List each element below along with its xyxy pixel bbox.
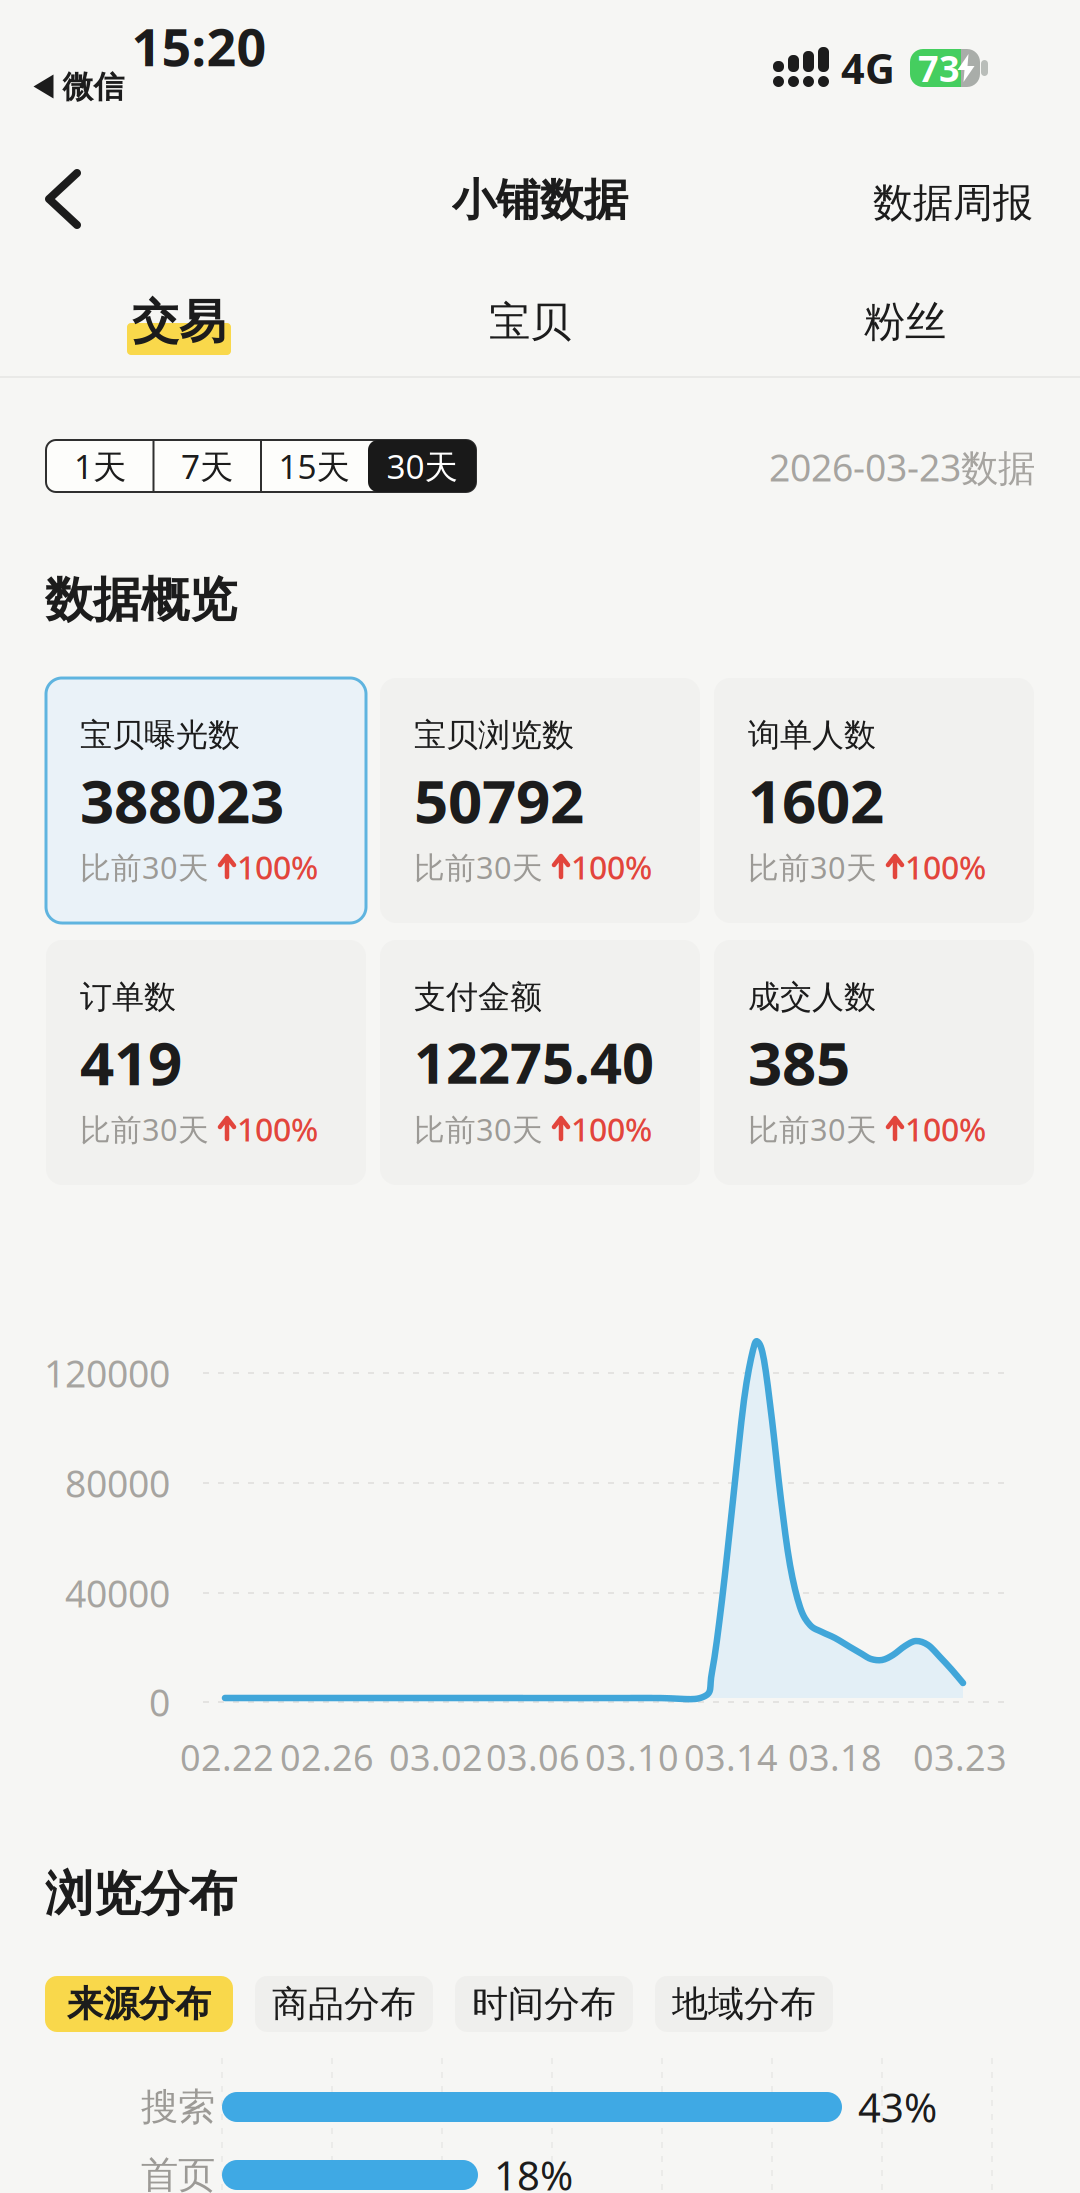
staticText: 02.26 [280,1733,374,1781]
button[interactable]: 来源分布 [45,1976,233,2032]
staticText: 02.22 [180,1733,274,1781]
staticText: 43% [858,2080,937,2133]
staticText: 宝贝曝光数 [80,715,240,755]
button[interactable]: 支付金额 [380,940,700,1185]
staticText: 微信 [62,68,124,106]
button[interactable]: 粉丝 [864,297,946,347]
staticText: 交易 [132,293,226,351]
staticText: 宝贝 [489,297,571,347]
staticText: 粉丝 [864,297,946,347]
staticText: 成交人数 [748,977,876,1017]
staticText: 73 [918,44,960,92]
button[interactable]: 商品分布 [255,1976,433,2032]
staticText: 100% [905,846,986,888]
staticText: 比前30天 [748,1109,886,1149]
button[interactable]: 7天 [154,440,260,492]
staticText: 388023 [80,760,284,840]
staticText: 18% [494,2148,573,2193]
staticText: 浏览分布 [45,1864,237,1923]
staticText: 7天 [181,444,233,488]
button[interactable]: 返回 [45,169,81,229]
button[interactable]: 时间分布 [455,1976,633,2032]
staticText: 比前30天 [748,847,886,887]
staticText: 50792 [414,760,584,840]
staticText: 100% [571,1108,652,1150]
staticText: 比前30天 [80,847,218,887]
staticText: 1602 [748,760,884,840]
staticText: 100% [905,1108,986,1150]
staticText: 03.02 [389,1733,483,1781]
button[interactable]: 宝贝曝光数 [46,678,366,923]
staticText: 40000 [65,1568,170,1618]
button[interactable]: 交易 [127,292,231,358]
staticText: 1天 [74,444,126,488]
button[interactable]: 数据周报 [873,178,1033,227]
staticText: 订单数 [80,977,176,1017]
staticText: 时间分布 [472,1982,616,2026]
button[interactable]: 15天 [261,440,367,492]
staticText: 03.14 [684,1733,778,1781]
staticText: 搜索 [141,2084,215,2130]
staticText: 2026-03-23数据 [769,442,1035,492]
staticText: 比前30天 [414,1109,552,1149]
staticText: 100% [237,1108,318,1150]
staticText: 首页 [141,2152,215,2193]
staticText: 30天 [386,444,457,488]
staticText: 0 [149,1677,170,1727]
staticText: 比前30天 [80,1109,218,1149]
staticText: 120000 [44,1348,170,1398]
button[interactable]: 地域分布 [655,1976,833,2032]
staticText: 4G [841,41,895,95]
staticText: 385 [748,1022,850,1102]
staticText: 12275.40 [414,1025,654,1099]
staticText: 宝贝浏览数 [414,715,574,755]
button[interactable]: 询单人数 [714,678,1034,923]
button[interactable]: 返回微信 [33,68,124,106]
staticText: 比前30天 [414,847,552,887]
staticText: 来源分布 [67,1982,211,2026]
staticText: 419 [80,1022,182,1102]
staticText: 03.18 [788,1733,882,1781]
button[interactable]: 1天 [47,440,153,492]
button[interactable]: 订单数 [46,940,366,1185]
staticText: 15天 [278,444,349,488]
staticText: 03.10 [585,1733,679,1781]
staticText: 80000 [65,1458,170,1508]
staticText: 询单人数 [748,715,876,755]
staticText: 15:20 [131,11,266,81]
button[interactable]: 30天 [368,440,476,492]
staticText: 地域分布 [672,1982,816,2026]
staticText: 小铺数据 [452,173,628,227]
staticText: 商品分布 [272,1982,416,2026]
button[interactable]: 宝贝 [489,297,571,347]
staticText: 100% [237,846,318,888]
staticText: 数据概览 [45,570,237,629]
staticText: 支付金额 [414,977,542,1017]
button[interactable]: 成交人数 [714,940,1034,1185]
button[interactable]: 宝贝浏览数 [380,678,700,923]
staticText: 03.23 [913,1733,1007,1781]
staticText: 数据周报 [873,178,1033,227]
staticText: 03.06 [486,1733,580,1781]
staticText: 100% [571,846,652,888]
